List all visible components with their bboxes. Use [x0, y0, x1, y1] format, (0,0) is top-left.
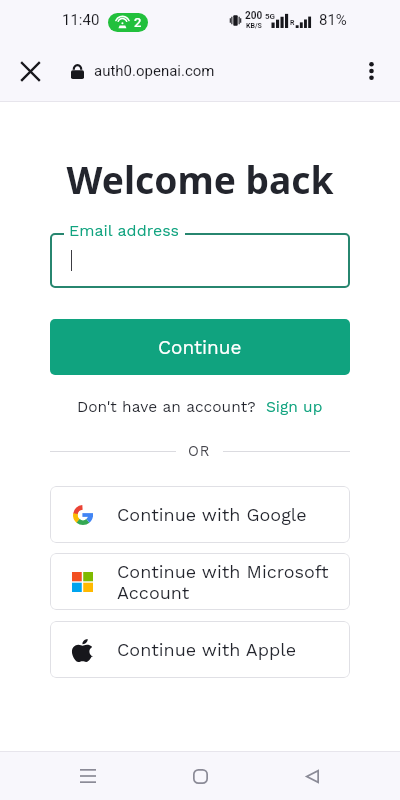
staticText: 2 — [134, 15, 142, 30]
staticText: Sign up — [266, 398, 323, 416]
staticText: 11:40 — [62, 11, 100, 29]
button[interactable]: Close — [8, 49, 52, 93]
button[interactable]: More options — [349, 49, 393, 93]
staticText: auth0.openai.com — [94, 62, 215, 80]
staticText: 200 — [245, 10, 263, 22]
button[interactable]: Continue with Apple — [50, 621, 350, 678]
button[interactable]: Sign up — [266, 398, 323, 416]
staticText: 5G — [265, 12, 276, 21]
button[interactable]: Continue — [50, 319, 350, 375]
staticText: Don't have an account? — [77, 398, 256, 416]
staticText: KB/S — [246, 22, 262, 30]
staticText: Continue with Apple — [117, 639, 297, 660]
button[interactable]: Home — [176, 752, 224, 800]
staticText: OR — [188, 443, 211, 460]
staticText: Email address — [69, 221, 180, 240]
button[interactable] — [50, 233, 350, 288]
button[interactable]: Recent apps — [64, 752, 112, 800]
staticText: Continue with Google — [117, 504, 307, 525]
button[interactable]: Back — [288, 752, 336, 800]
staticText: Account — [117, 582, 190, 603]
staticText: 81% — [319, 11, 347, 29]
button[interactable]: Continue with Microsoft — [50, 553, 350, 610]
staticText: R — [290, 19, 295, 27]
staticText: Continue — [158, 336, 242, 358]
staticText: Continue with Microsoft — [117, 561, 329, 582]
button[interactable]: Continue with Google — [50, 486, 350, 543]
staticText: Welcome back — [0, 154, 400, 205]
